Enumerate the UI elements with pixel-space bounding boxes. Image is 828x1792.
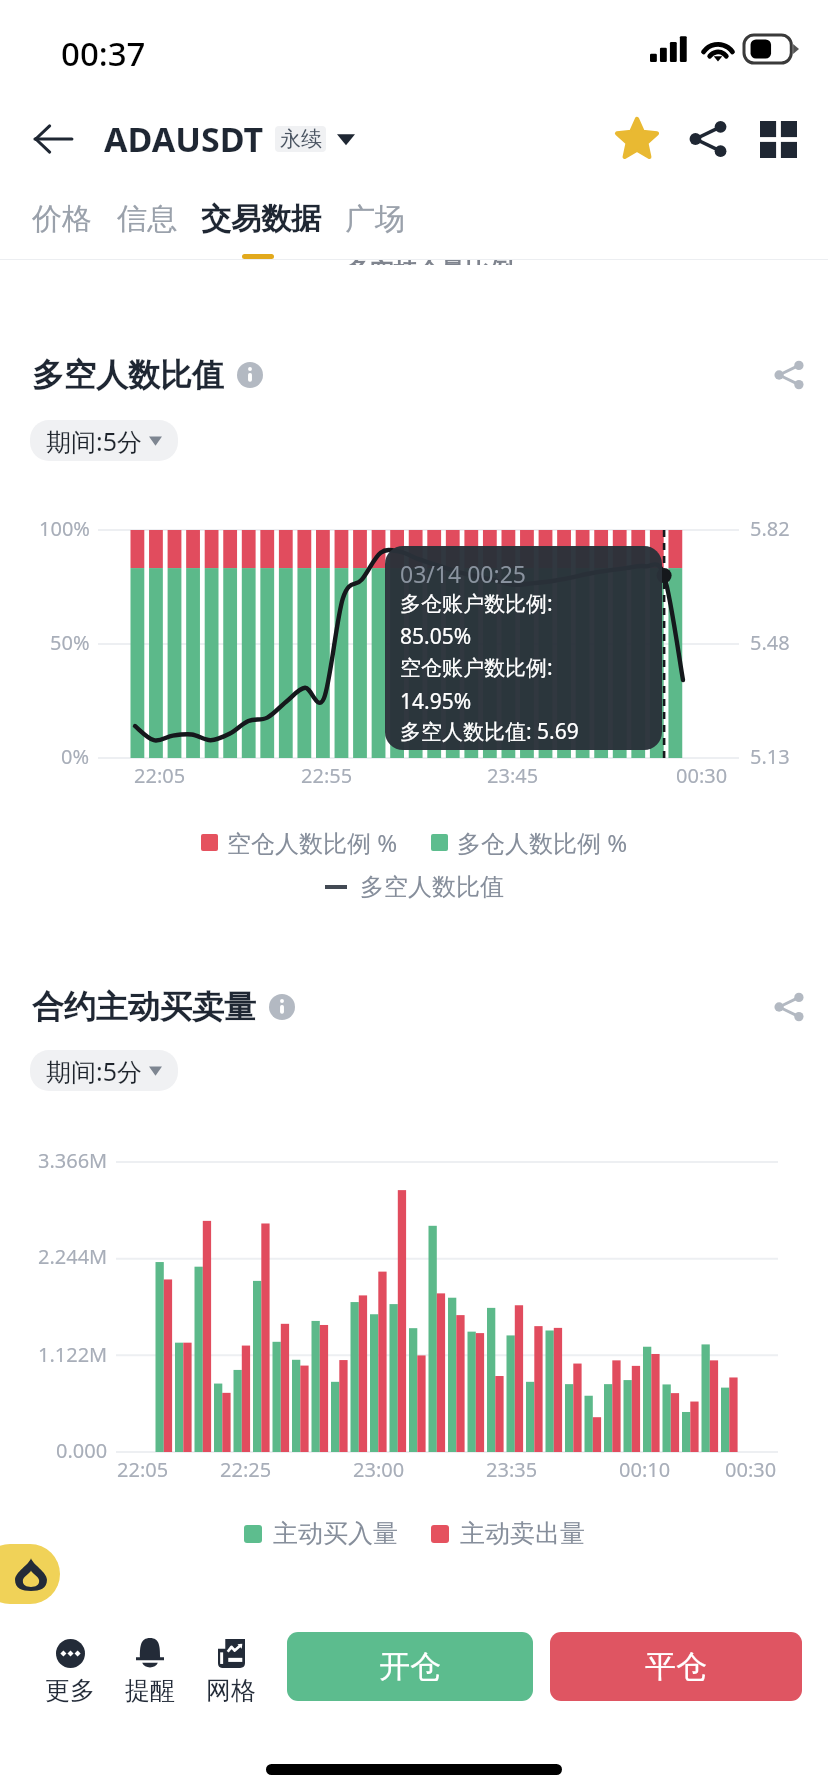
staticText: 23:00: [353, 1456, 405, 1483]
button[interactable]: Info: [267, 992, 297, 1022]
staticText: 多空人数比值: [32, 355, 224, 395]
staticText: 1.122M: [38, 1341, 108, 1368]
staticText: 广场: [345, 200, 405, 238]
staticText: 期间:5分: [46, 1054, 143, 1088]
staticText: 期间:5分: [46, 424, 143, 458]
staticText: ADAUSDT: [104, 116, 264, 162]
staticText: 提醒: [125, 1675, 175, 1706]
button[interactable]: 期间:5分: [30, 1050, 178, 1091]
button[interactable]: 价格: [18, 186, 106, 252]
button[interactable]: 提醒: [105, 1636, 195, 1708]
button[interactable]: 平仓: [550, 1632, 802, 1701]
staticText: 3.366M: [38, 1147, 108, 1174]
staticText: 22:05: [117, 1456, 169, 1483]
staticText: 00:30: [676, 762, 728, 789]
button[interactable]: Back: [22, 108, 84, 170]
button[interactable]: Info: [235, 360, 265, 390]
staticText: 0.000: [56, 1437, 108, 1464]
button[interactable]: 信息: [103, 186, 191, 252]
staticText: 主动买入量: [273, 1518, 398, 1549]
staticText: 23:45: [487, 762, 539, 789]
staticText: 多空人数比值: [360, 872, 504, 902]
staticText: 03/14 00:25: [400, 558, 526, 589]
staticText: 多仓人数比例 %: [457, 826, 628, 859]
staticText: 22:05: [134, 762, 186, 789]
button[interactable]: 更多: [25, 1636, 115, 1708]
staticText: 100%: [39, 515, 90, 542]
staticText: 00:37: [61, 31, 146, 76]
button[interactable]: Share chart: [768, 986, 810, 1028]
staticText: 22:55: [301, 762, 353, 789]
staticText: 5.13: [750, 743, 790, 770]
staticText: 平仓: [645, 1647, 707, 1686]
button[interactable]: 交易数据: [187, 186, 335, 252]
staticText: 价格: [32, 200, 92, 238]
staticText: 5.82: [750, 515, 790, 542]
staticText: 23:35: [486, 1456, 538, 1483]
staticText: 交易数据: [201, 200, 321, 238]
staticText: 多仓账户数比例:: [400, 589, 553, 618]
button[interactable]: Favorite: [607, 109, 667, 169]
button[interactable]: ADAUSDT: [104, 111, 355, 167]
button[interactable]: Quick trade: [0, 1544, 60, 1604]
staticText: 开仓: [379, 1647, 441, 1686]
staticText: 14.95%: [400, 687, 472, 716]
staticText: 00:30: [725, 1456, 777, 1483]
button[interactable]: 网格: [186, 1636, 276, 1708]
staticText: 00:10: [619, 1456, 671, 1483]
staticText: 信息: [117, 200, 177, 238]
staticText: 空仓人数比例 %: [227, 826, 398, 859]
button[interactable]: 期间:5分: [30, 420, 178, 461]
staticText: 更多: [45, 1675, 95, 1706]
staticText: 5.48: [750, 629, 790, 656]
staticText: 2.244M: [38, 1243, 108, 1270]
staticText: 0%: [61, 743, 90, 770]
button[interactable]: 开仓: [287, 1632, 533, 1701]
staticText: 多空人数比值: 5.69: [400, 717, 579, 746]
button[interactable]: Share chart: [768, 354, 810, 396]
staticText: 85.05%: [400, 622, 472, 651]
staticText: 空仓账户数比例:: [400, 653, 553, 682]
button[interactable]: Share: [678, 109, 738, 169]
staticText: 22:25: [220, 1456, 272, 1483]
staticText: 50%: [50, 629, 90, 656]
staticText: 主动卖出量: [460, 1518, 585, 1549]
button[interactable]: Grid view: [748, 109, 808, 169]
button[interactable]: 广场: [331, 186, 419, 252]
staticText: 网格: [206, 1675, 256, 1706]
staticText: 永续: [280, 126, 322, 152]
staticText: 多空持仓量比例: [345, 259, 513, 265]
staticText: 合约主动买卖量: [32, 987, 256, 1027]
